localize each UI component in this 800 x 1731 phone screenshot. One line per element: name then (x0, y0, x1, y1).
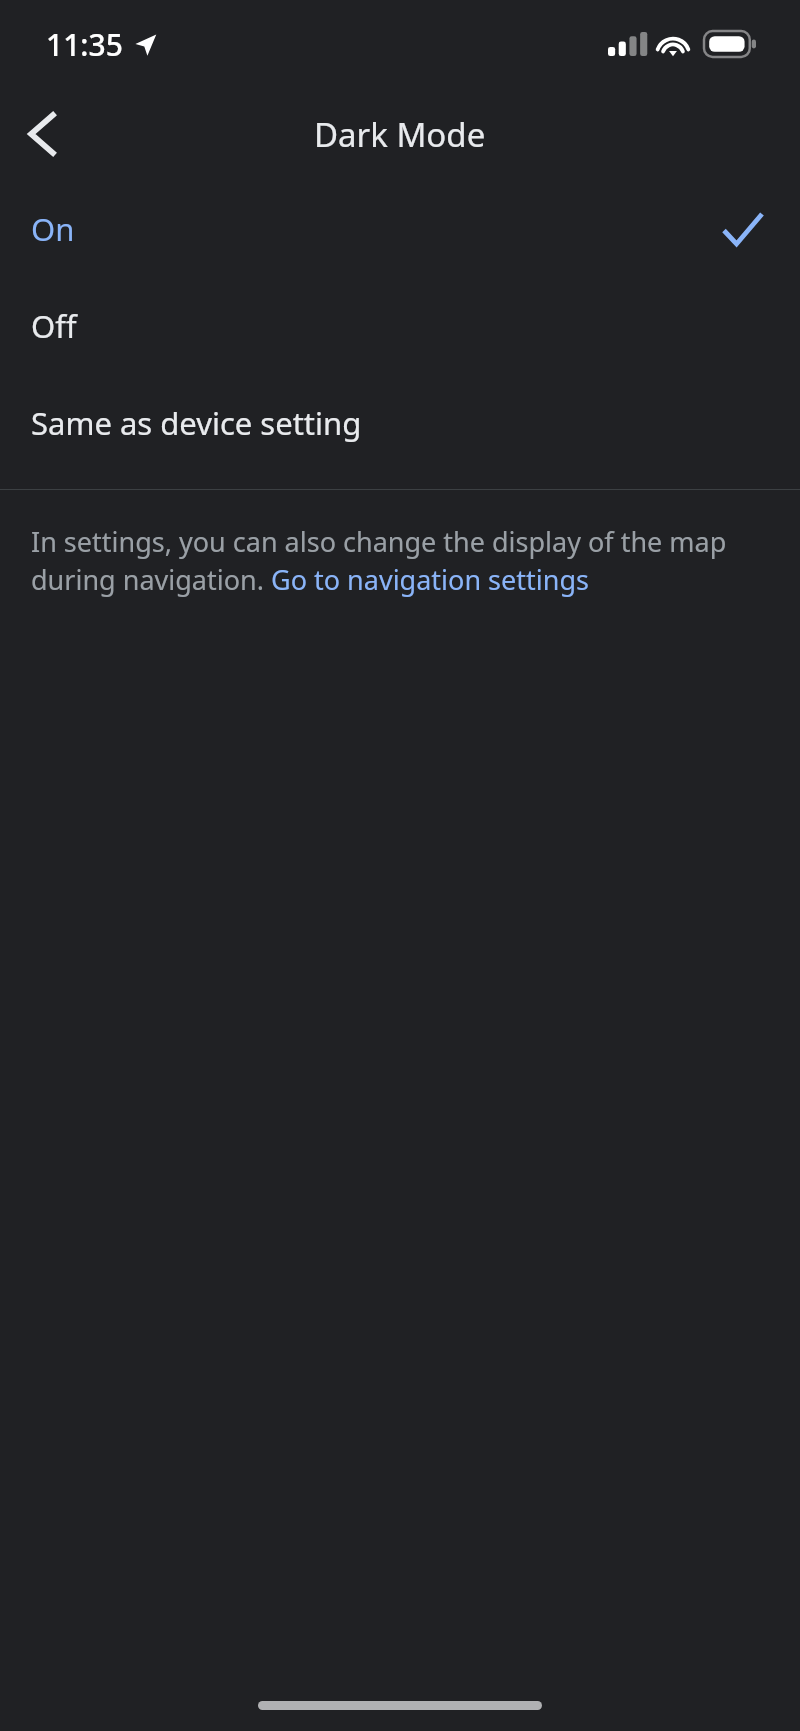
staticText: In settings, you can also change the dis… (31, 523, 772, 598)
staticText: Off (31, 305, 77, 347)
button[interactable]: Back (0, 92, 84, 176)
button[interactable]: On (0, 180, 800, 277)
button[interactable]: Same as device setting (0, 374, 800, 471)
staticText: Dark Mode (314, 112, 486, 157)
staticText: 11:35 (46, 24, 123, 65)
button[interactable]: In settings, you can also change the dis… (0, 490, 800, 618)
staticText: Same as device setting (31, 402, 362, 444)
staticText: On (31, 208, 75, 250)
button[interactable]: Off (0, 277, 800, 374)
